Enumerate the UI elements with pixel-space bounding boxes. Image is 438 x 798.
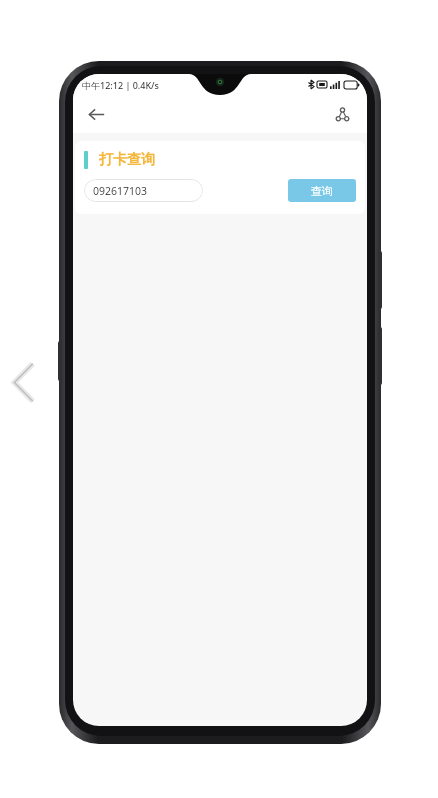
staticText: 092617103 bbox=[93, 184, 148, 198]
staticText: 打卡查询 bbox=[99, 151, 155, 169]
button[interactable]: Back bbox=[4, 355, 44, 410]
button[interactable]: Back bbox=[79, 97, 113, 131]
button[interactable]: 092617103 bbox=[84, 179, 203, 202]
button[interactable]: Share bbox=[325, 97, 359, 131]
staticText: 查询 bbox=[311, 184, 333, 198]
button[interactable]: 查询 bbox=[288, 179, 356, 202]
staticText: 中午12:12 | 0.4K/s bbox=[82, 79, 159, 91]
